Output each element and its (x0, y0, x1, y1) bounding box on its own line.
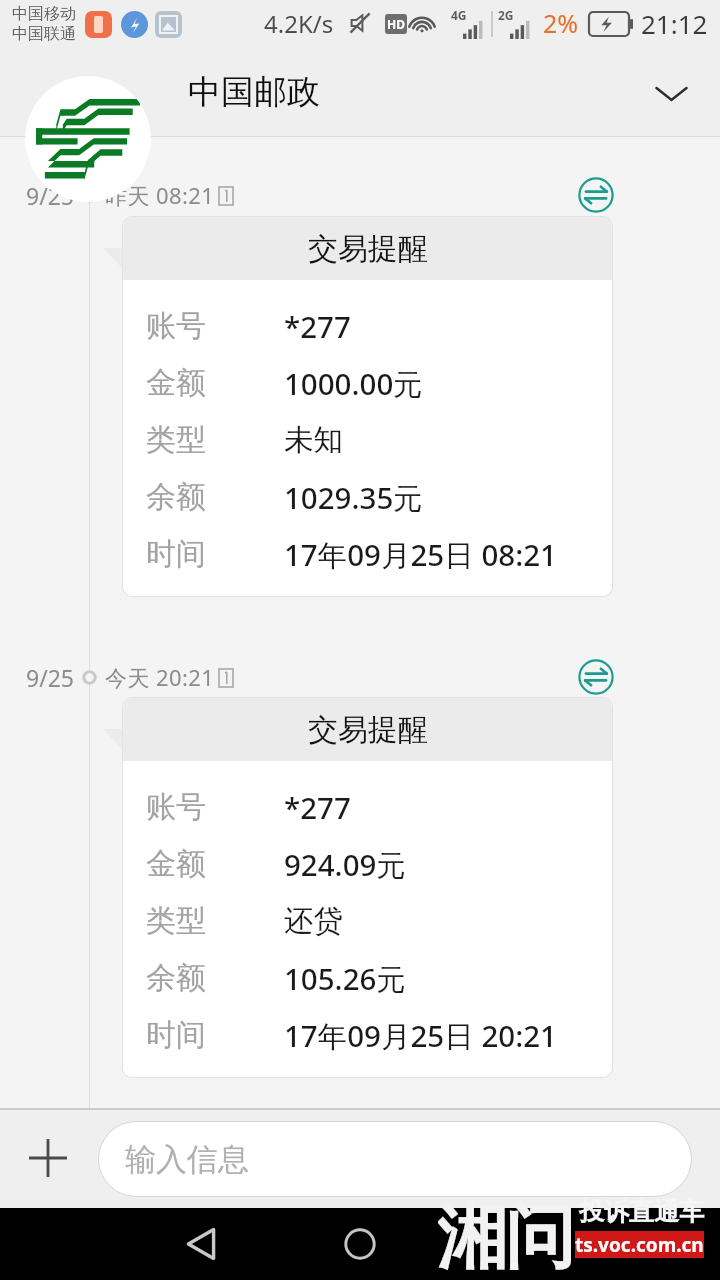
button[interactable]: Home (331, 1215, 389, 1273)
staticText: 时间 (146, 535, 206, 573)
button[interactable]: Expand conversation options (644, 66, 698, 120)
staticText: *277 (284, 306, 351, 346)
staticText: 中国移动 (12, 4, 76, 24)
staticText: 昨天 08:21 (105, 180, 215, 210)
staticText: 类型 (146, 902, 206, 940)
staticText: 2G (498, 7, 514, 23)
staticText: 105.26元 (284, 958, 406, 998)
button[interactable]: Resend message (574, 658, 618, 696)
staticText: 金额 (146, 845, 206, 883)
staticText: 还贷 (284, 903, 343, 940)
staticText: 类型 (146, 421, 206, 459)
staticText: ts.voc.com.cn (575, 1232, 704, 1258)
staticText: 输入信息 (125, 1140, 249, 1179)
staticText: 账号 (146, 307, 206, 345)
staticText: 余额 (146, 478, 206, 516)
staticText: 今天 20:21 (105, 662, 215, 692)
staticText: 17年09月25日 08:21 (284, 534, 557, 574)
button[interactable]: 交易提醒 (123, 698, 612, 1077)
staticText: *277 (284, 787, 351, 827)
staticText: 中国邮政 (188, 71, 320, 113)
staticText: 9/25 (26, 662, 75, 693)
button[interactable]: Resend message (574, 176, 618, 214)
button[interactable]: 输入信息 (99, 1122, 691, 1196)
staticText: 交易提醒 (308, 230, 428, 268)
staticText: 9/25 (26, 180, 75, 211)
button[interactable]: Add attachment (18, 1128, 78, 1188)
staticText: 余额 (146, 959, 206, 997)
button[interactable]: Contact avatar (25, 76, 151, 202)
staticText: 1029.35元 (284, 477, 423, 517)
staticText: 1000.00元 (284, 363, 423, 403)
staticText: 投诉直通车 (579, 1196, 704, 1227)
button[interactable]: 交易提醒 (123, 217, 612, 596)
staticText: 湘问 (438, 1194, 574, 1270)
staticText: 924.09元 (284, 844, 406, 884)
staticText: 交易提醒 (308, 711, 428, 749)
staticText: 2% (543, 6, 579, 40)
staticText: 时间 (146, 1016, 206, 1054)
staticText: 17年09月25日 20:21 (284, 1015, 557, 1055)
staticText: 4.2K/s (264, 7, 334, 40)
staticText: 账号 (146, 788, 206, 826)
staticText: 金额 (146, 364, 206, 402)
staticText: 21:12 (641, 6, 708, 41)
staticText: 中国联通 (12, 24, 76, 44)
staticText: HD (387, 16, 405, 32)
staticText: 4G (451, 7, 467, 23)
button[interactable]: Back (172, 1215, 230, 1273)
staticText: 未知 (284, 422, 343, 459)
